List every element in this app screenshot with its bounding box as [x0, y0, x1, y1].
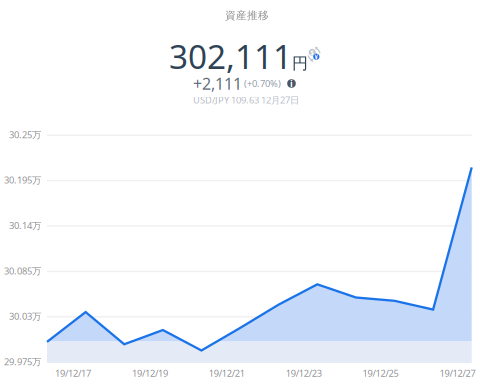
staticText: 30.195万	[4, 174, 41, 186]
staticText: 19/12/21	[209, 367, 245, 379]
staticText: (+0.70%)	[242, 77, 281, 90]
staticText: USD/JPY 109.63 12月27日	[193, 94, 299, 106]
staticText: 30.25万	[9, 128, 41, 141]
staticText: 19/12/23	[286, 367, 322, 379]
staticText: 30.085万	[4, 265, 41, 277]
staticText: 19/12/27	[439, 367, 475, 379]
button[interactable]: Switch currency	[306, 46, 321, 62]
staticText: 資産推移	[225, 9, 269, 22]
staticText: 19/12/25	[363, 367, 399, 379]
staticText: 19/12/19	[132, 367, 168, 379]
staticText: 302,111	[169, 34, 292, 78]
staticText: 30.14万	[9, 219, 41, 232]
staticText: 19/12/17	[55, 367, 91, 379]
staticText: 円	[292, 53, 308, 73]
button[interactable]: About this figure	[281, 79, 296, 88]
staticText: ¥	[314, 52, 318, 61]
staticText: 29.975万	[4, 355, 41, 368]
staticText: +2,111	[193, 73, 242, 94]
staticText: 30.03万	[9, 310, 41, 322]
staticText: i	[290, 77, 293, 90]
staticText: $	[310, 48, 314, 57]
